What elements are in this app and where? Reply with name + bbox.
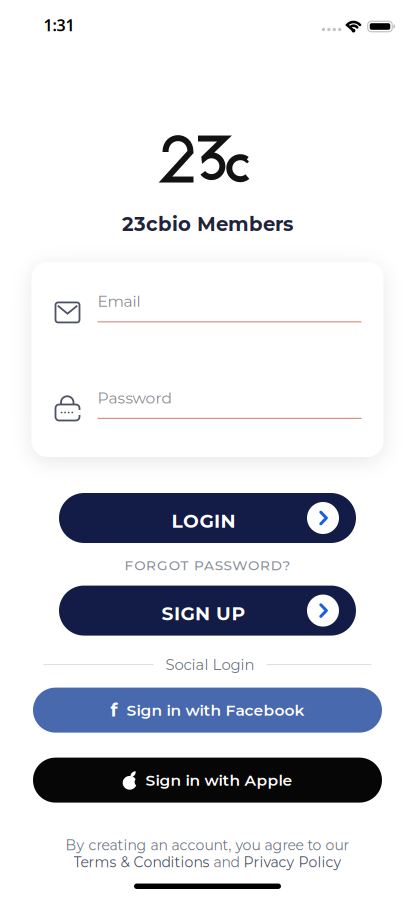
staticText: Sign in with Facebook <box>126 701 304 720</box>
staticText: Social Login <box>165 656 254 674</box>
staticText: Terms & Conditions <box>73 854 209 871</box>
staticText: LOGIN <box>171 510 235 532</box>
button[interactable]: Email <box>55 292 361 322</box>
staticText: SIGN UP <box>161 602 245 625</box>
button[interactable]: f <box>33 688 382 733</box>
staticText: and <box>209 854 243 871</box>
staticText: FORGOT PASSWORD? <box>124 557 290 574</box>
staticText: Sign in with Apple <box>145 771 292 790</box>
button[interactable]: SIGN UP <box>59 586 356 636</box>
button[interactable]: FORGOT PASSWORD? <box>124 557 290 574</box>
staticText: Privacy Policy <box>243 854 341 871</box>
button[interactable]: Sign in with Apple <box>33 758 382 803</box>
staticText: Email <box>97 292 140 311</box>
staticText: 23cbio Members <box>122 212 293 236</box>
staticText: 1:31 <box>43 14 74 36</box>
button[interactable]: Password <box>55 388 361 419</box>
button[interactable]: Terms & Conditions <box>73 854 209 871</box>
staticText: By creating an account, you agree to our <box>65 837 349 854</box>
staticText: Password <box>97 388 171 407</box>
button[interactable]: Privacy Policy <box>243 854 341 871</box>
button[interactable]: LOGIN <box>59 493 356 543</box>
staticText: f <box>110 699 117 721</box>
